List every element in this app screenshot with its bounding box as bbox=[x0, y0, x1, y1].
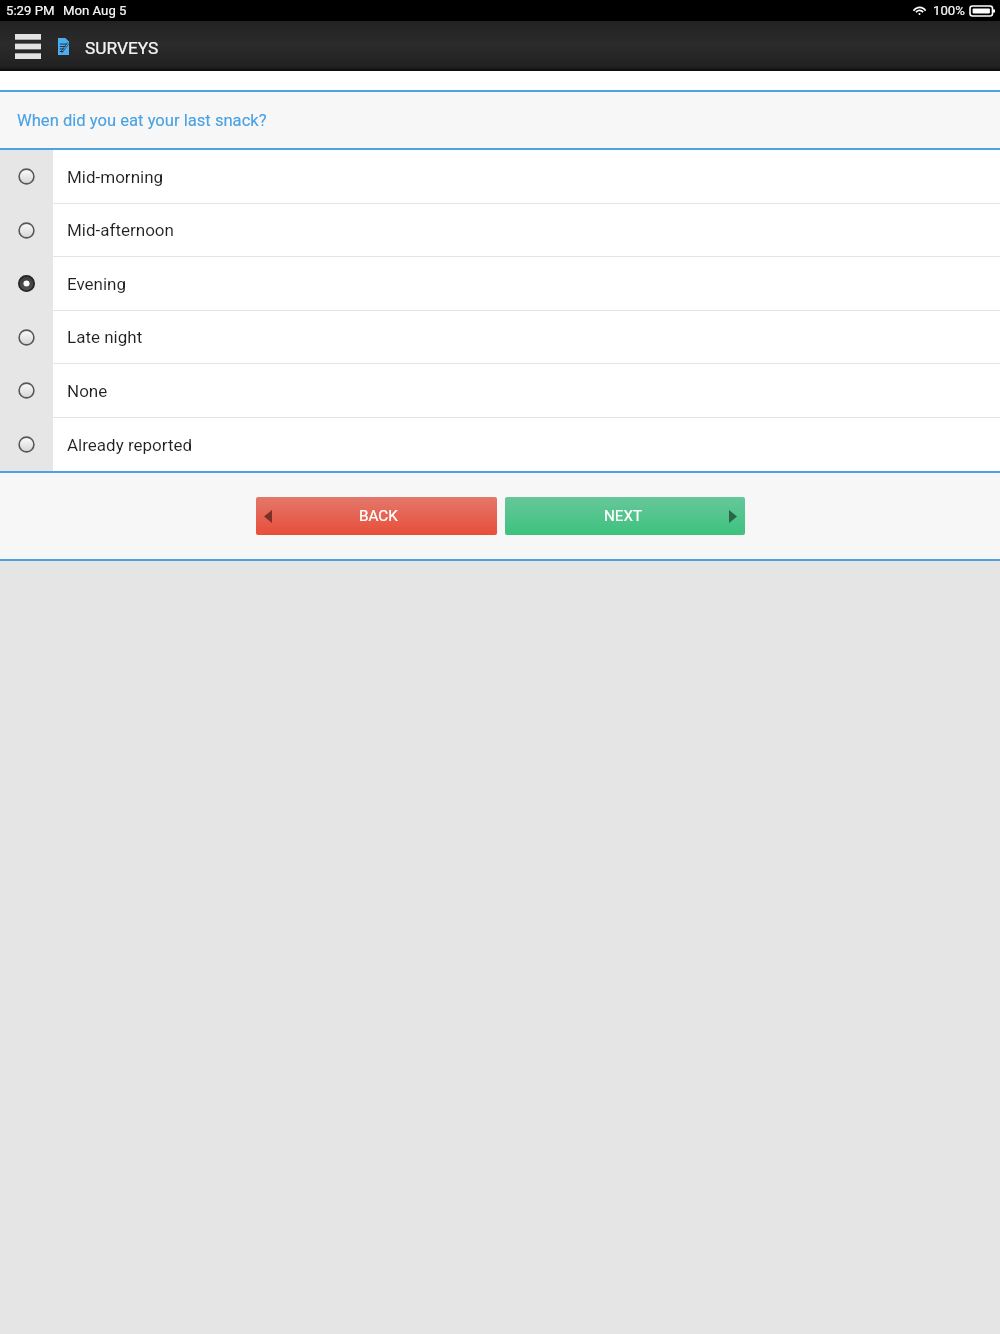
button[interactable]: Mid-morning bbox=[0, 150, 1000, 203]
staticText: 100% bbox=[933, 3, 965, 18]
staticText: BACK bbox=[359, 507, 398, 525]
staticText: SURVEYS bbox=[85, 38, 159, 58]
staticText: Mid-afternoon bbox=[67, 220, 174, 240]
button[interactable]: Open navigation menu bbox=[0, 21, 55, 71]
staticText: Already reported bbox=[67, 435, 193, 455]
button[interactable]: Evening bbox=[0, 257, 1000, 310]
button[interactable]: NEXT bbox=[505, 497, 745, 535]
staticText: Mon Aug 5 bbox=[63, 3, 127, 18]
staticText: Evening bbox=[67, 274, 127, 294]
staticText: When did you eat your last snack? bbox=[17, 111, 267, 130]
button[interactable]: BACK bbox=[256, 497, 497, 535]
button[interactable]: Already reported bbox=[0, 418, 1000, 471]
button[interactable]: None bbox=[0, 364, 1000, 417]
staticText: Late night bbox=[67, 327, 143, 347]
staticText: NEXT bbox=[604, 507, 643, 525]
button[interactable]: Mid-afternoon bbox=[0, 204, 1000, 256]
staticText: 5:29 PM bbox=[6, 3, 55, 18]
staticText: None bbox=[67, 381, 108, 401]
staticText: Mid-morning bbox=[67, 167, 164, 187]
button[interactable]: Late night bbox=[0, 311, 1000, 363]
